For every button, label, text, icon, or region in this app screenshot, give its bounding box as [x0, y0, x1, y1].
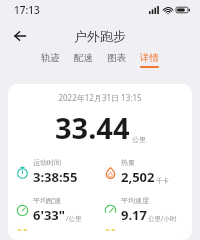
staticText: 运动时间 — [33, 158, 61, 167]
staticText: 17:13 — [14, 3, 40, 17]
staticText: 9.17 — [121, 206, 147, 224]
staticText: 6'33" — [33, 206, 65, 224]
staticText: 33.44 — [55, 108, 130, 147]
button[interactable]: 配速 — [74, 52, 93, 68]
staticText: 图表 — [107, 52, 126, 64]
staticText: 3:38:55 — [33, 168, 78, 186]
staticText: 千卡 — [156, 177, 169, 185]
staticText: 详情 — [140, 52, 159, 64]
staticText: /公里 — [66, 214, 82, 223]
staticText: 公里 — [132, 135, 146, 144]
staticText: 2,502 — [121, 168, 155, 186]
staticText: 配速 — [74, 52, 93, 64]
staticText: 户外跑步 — [74, 28, 126, 44]
button[interactable]: 图表 — [107, 52, 126, 68]
button[interactable]: Back — [6, 22, 34, 50]
staticText: 公里/小时 — [148, 214, 177, 223]
staticText: 热量 — [121, 158, 135, 167]
staticText: 2022年12月31日 13:15 — [8, 92, 192, 103]
staticText: 平均速度 — [121, 196, 149, 205]
staticText: 轨迹 — [41, 52, 60, 64]
button[interactable]: 轨迹 — [41, 52, 60, 68]
button[interactable]: 详情 — [140, 52, 159, 68]
staticText: 平均配速 — [33, 196, 61, 205]
